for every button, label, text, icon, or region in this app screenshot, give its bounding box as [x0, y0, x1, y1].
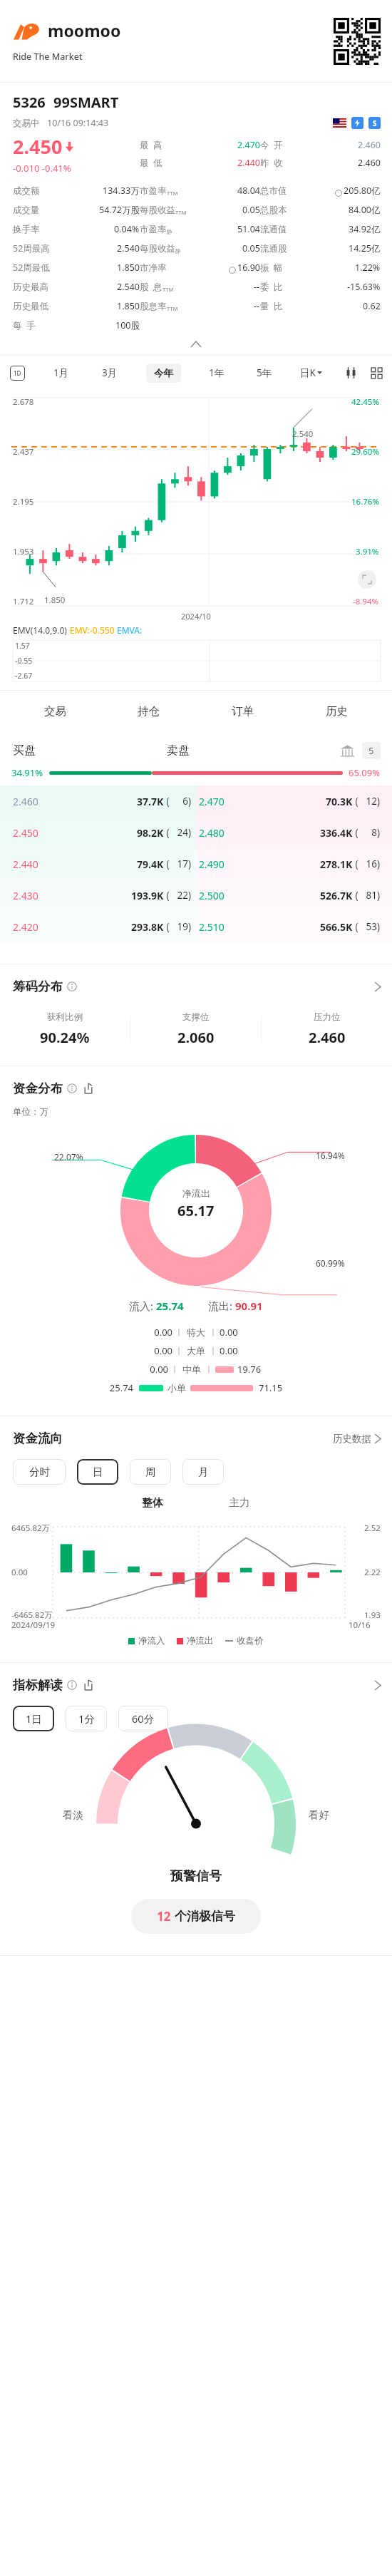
- button[interactable]: 1日: [13, 1706, 54, 1731]
- other: Share: [83, 1083, 93, 1093]
- button[interactable]: 5年: [252, 363, 277, 383]
- staticText: 2.678: [13, 396, 34, 408]
- staticText: 5: [368, 744, 374, 757]
- staticText: 336.4K: [320, 826, 353, 840]
- staticText: 0.05: [242, 204, 260, 216]
- staticText: 0.05: [242, 242, 260, 254]
- button[interactable]: 2.450: [0, 817, 392, 848]
- staticText: 2.52: [364, 1523, 381, 1534]
- staticText: 16.94%: [316, 1150, 345, 1161]
- staticText: 流通股: [260, 243, 287, 254]
- staticText: ): [377, 857, 381, 870]
- staticText: 2.470: [199, 795, 225, 808]
- staticText: 8: [359, 826, 377, 839]
- staticText: 1月: [53, 366, 69, 379]
- staticText: 53: [359, 920, 377, 933]
- staticText: 1年: [209, 366, 225, 379]
- staticText: 19.76: [237, 1363, 262, 1376]
- button[interactable]: 3月: [98, 363, 122, 383]
- staticText: 流出:: [208, 1299, 235, 1313]
- staticText: 持仓: [138, 704, 160, 718]
- button[interactable]: 2.420: [0, 911, 392, 942]
- button[interactable]: 整体: [130, 1496, 175, 1510]
- staticText: EMV:-0.550: [70, 624, 117, 636]
- staticText: 0.00: [220, 1344, 257, 1357]
- staticText: (: [164, 889, 170, 902]
- button[interactable]: 指标解读: [13, 1677, 381, 1693]
- staticText: ): [377, 795, 381, 808]
- button[interactable]: 1月: [49, 363, 73, 383]
- staticText: 2.510: [199, 920, 225, 934]
- staticText: 193.9K: [131, 889, 164, 902]
- button[interactable]: 月: [182, 1459, 224, 1485]
- button[interactable]: 订单: [195, 691, 289, 732]
- staticText: -0.55: [15, 656, 33, 666]
- staticText: 2.540: [117, 242, 140, 254]
- staticText: 16: [359, 857, 377, 870]
- staticText: 99SMART: [53, 93, 119, 112]
- button[interactable]: 持仓: [102, 691, 195, 732]
- staticText: 卖盘: [167, 743, 190, 758]
- button[interactable]: Broker: [340, 743, 355, 758]
- staticText: 1D: [14, 369, 21, 377]
- staticText: (: [353, 857, 359, 870]
- staticText: S: [373, 118, 377, 128]
- staticText: 今 开: [260, 139, 283, 151]
- button[interactable]: 筹码分布: [13, 979, 381, 994]
- button[interactable]: 2.440: [0, 848, 392, 880]
- staticText: 历史最低: [13, 301, 48, 312]
- staticText: TTM: [167, 190, 178, 197]
- button[interactable]: 1年: [205, 363, 229, 383]
- button[interactable]: 2.430: [0, 880, 392, 911]
- button[interactable]: 1分: [66, 1706, 107, 1731]
- button[interactable]: 资金流向: [13, 1431, 381, 1446]
- staticText: 12: [359, 795, 377, 808]
- staticText: 股 息: [140, 281, 163, 293]
- staticText: 日K: [300, 366, 316, 379]
- staticText: 17: [170, 857, 188, 870]
- staticText: 70.3K: [326, 795, 353, 808]
- button[interactable]: 日K: [300, 366, 322, 379]
- button[interactable]: 1D: [10, 366, 25, 381]
- button[interactable]: 交易: [9, 691, 102, 732]
- staticText: ): [188, 920, 192, 933]
- button[interactable]: Grid view: [371, 368, 382, 378]
- button[interactable]: 资金分布: [13, 1081, 381, 1096]
- staticText: (: [353, 889, 359, 902]
- staticText: 60.99%: [316, 1257, 345, 1269]
- staticText: 54.72万股: [99, 204, 140, 216]
- button[interactable]: 今年: [146, 364, 181, 383]
- staticText: Ride The Market: [13, 51, 83, 63]
- staticText: 市盈率: [140, 224, 167, 235]
- button[interactable]: 60分: [118, 1706, 168, 1731]
- staticText: 2.460: [358, 139, 381, 151]
- button[interactable]: 日: [77, 1459, 118, 1485]
- staticText: 0.04%: [114, 223, 140, 235]
- staticText: 1.850: [117, 262, 140, 274]
- staticText: 交易中: [13, 118, 40, 129]
- staticText: 成交量: [13, 205, 40, 216]
- button[interactable]: 5: [362, 742, 381, 759]
- staticText: 14.25亿: [349, 242, 381, 254]
- button[interactable]: 主力: [217, 1496, 262, 1510]
- button[interactable]: 分时: [13, 1459, 66, 1485]
- button[interactable]: 12: [131, 1899, 261, 1934]
- staticText: 2.470: [237, 139, 260, 151]
- other: Share: [83, 1680, 93, 1690]
- staticText: ): [188, 889, 192, 902]
- button[interactable]: 2.460: [0, 785, 392, 817]
- button[interactable]: 历史: [289, 691, 383, 732]
- staticText: 0.00: [11, 1567, 28, 1578]
- staticText: 日: [93, 1465, 103, 1478]
- staticText: 周: [145, 1465, 156, 1478]
- staticText: 65.09%: [349, 766, 381, 779]
- button[interactable]: Fullscreen: [358, 570, 376, 589]
- staticText: 获利比例: [47, 1011, 83, 1023]
- button[interactable]: 周: [130, 1459, 171, 1485]
- staticText: 52周最低: [13, 262, 50, 274]
- button[interactable]: Candle settings: [346, 367, 357, 378]
- staticText: 流通值: [260, 224, 287, 235]
- staticText: 净流出: [182, 1187, 210, 1199]
- staticText: 2.540: [292, 428, 314, 440]
- staticText: 60分: [132, 1711, 155, 1726]
